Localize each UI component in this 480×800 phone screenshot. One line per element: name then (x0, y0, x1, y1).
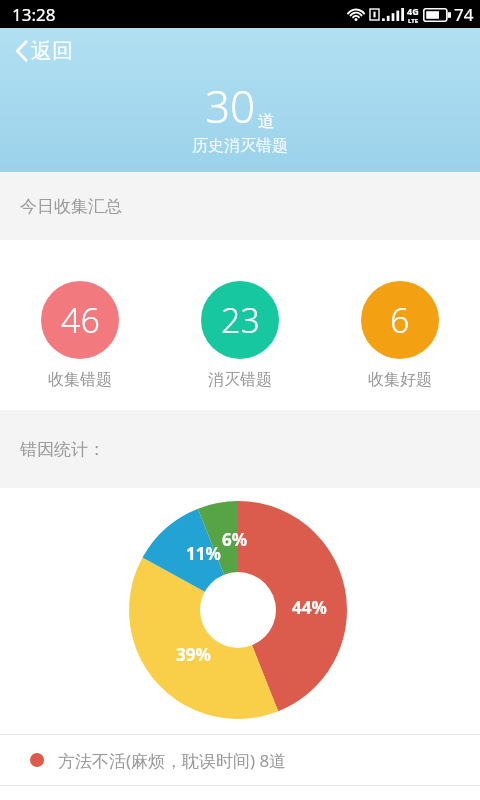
staticText: 返回 (31, 38, 73, 64)
staticText: 23 (221, 297, 260, 343)
staticText: 30 (205, 76, 256, 136)
staticText: 错因统计： (20, 439, 105, 460)
staticText: 历史消灭错题 (192, 136, 288, 156)
staticText: 13:28 (12, 3, 56, 26)
button[interactable]: 方法不活(麻烦，耽误时间) 8道 (0, 735, 480, 785)
staticText: 收集好题 (368, 370, 432, 390)
staticText: 46 (61, 297, 100, 343)
staticText: 39% (176, 643, 211, 666)
staticText: 方法不活(麻烦，耽误时间) 8道 (58, 749, 287, 772)
staticText: 道 (258, 111, 275, 132)
button[interactable]: 6 (320, 281, 480, 390)
staticText: 4G (407, 5, 419, 17)
staticText: 74 (454, 3, 474, 26)
button[interactable]: 46 (0, 281, 160, 390)
button[interactable]: 23 (160, 281, 320, 390)
staticText: 11% (186, 542, 221, 565)
staticText: 今日收集汇总 (20, 196, 122, 217)
button[interactable]: 返回 (12, 34, 77, 68)
staticText: 收集错题 (48, 370, 112, 390)
staticText: 消灭错题 (208, 370, 272, 390)
staticText: 6% (222, 528, 248, 551)
staticText: 44% (292, 596, 327, 619)
staticText: 6 (390, 297, 410, 343)
staticText: LTE (408, 17, 419, 25)
